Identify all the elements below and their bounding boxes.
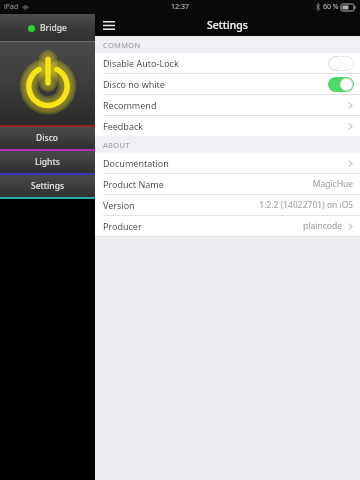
button[interactable]: Recommend — [95, 95, 360, 115]
staticText: Version — [103, 199, 135, 211]
staticText: MagicHue — [312, 178, 353, 190]
staticText: Recommend — [103, 99, 157, 111]
button[interactable]: Feedback — [95, 116, 360, 136]
button[interactable]: Producer — [95, 216, 360, 236]
staticText: Disco — [36, 132, 59, 144]
button[interactable]: On — [328, 77, 354, 92]
staticText: 12:37 — [171, 2, 189, 12]
staticText: Producer — [103, 220, 142, 232]
staticText: iPad — [4, 2, 19, 12]
staticText: Settings — [31, 180, 65, 192]
staticText: Bridge — [40, 22, 67, 34]
button[interactable]: Lights — [0, 151, 95, 173]
staticText: 1.2.2 (14022701) on iOS — [259, 199, 353, 211]
staticText: Settings — [207, 18, 248, 32]
button[interactable]: Product Name — [95, 174, 360, 194]
staticText: 60 % — [323, 2, 339, 12]
staticText: plaincode — [303, 220, 342, 232]
staticText: Disco no white — [103, 78, 165, 90]
staticText: COMMON — [103, 40, 141, 50]
button[interactable]: Power toggle — [0, 42, 95, 125]
staticText: Documentation — [103, 157, 169, 169]
button[interactable]: Settings — [0, 175, 95, 197]
button[interactable]: Disable Auto-Lock — [95, 53, 360, 73]
staticText: Disable Auto-Lock — [103, 57, 179, 69]
button[interactable]: Disco — [0, 127, 95, 149]
button[interactable]: Version — [95, 195, 360, 215]
button[interactable]: Documentation — [95, 153, 360, 173]
button[interactable]: Disco no white — [95, 74, 360, 94]
button[interactable]: Off — [328, 56, 354, 71]
staticText: Product Name — [103, 178, 164, 190]
staticText: Lights — [35, 156, 60, 168]
staticText: ABOUT — [103, 140, 130, 150]
staticText: Feedback — [103, 120, 144, 132]
button[interactable]: Bridge — [0, 14, 95, 42]
button[interactable]: Menu — [100, 16, 118, 34]
